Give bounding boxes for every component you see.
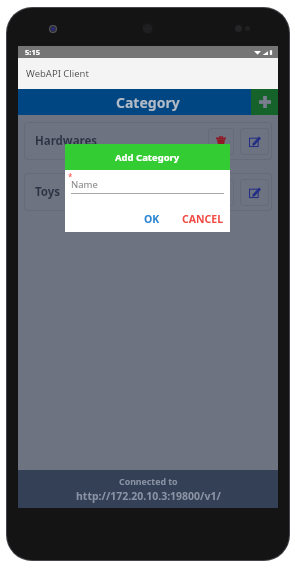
button[interactable]: Toys	[24, 173, 272, 211]
staticText: Name	[71, 178, 98, 191]
button[interactable]: Add category	[251, 89, 278, 115]
button[interactable]: CANCEL	[179, 210, 224, 228]
staticText: WebAPI Client	[26, 67, 89, 80]
staticText: Category	[116, 93, 180, 112]
staticText: Add Category	[115, 151, 180, 164]
staticText: OK	[144, 212, 160, 226]
staticText: Hardwares	[35, 133, 98, 149]
staticText: http://172.20.10.3:19800/v1/	[76, 489, 221, 503]
staticText: Toys	[35, 184, 61, 200]
staticText: Connected to	[119, 476, 178, 488]
staticText: CANCEL	[182, 212, 224, 226]
staticText: 5:15	[25, 47, 40, 57]
button[interactable]: Delete	[208, 179, 234, 206]
button[interactable]: Edit	[240, 128, 269, 155]
button[interactable]: Delete	[208, 128, 234, 155]
button[interactable]	[18, 89, 251, 115]
button[interactable]: Edit	[240, 179, 269, 206]
staticText: *	[68, 171, 73, 182]
button[interactable]: OK	[139, 210, 165, 228]
button[interactable]: Hardwares	[24, 122, 272, 160]
